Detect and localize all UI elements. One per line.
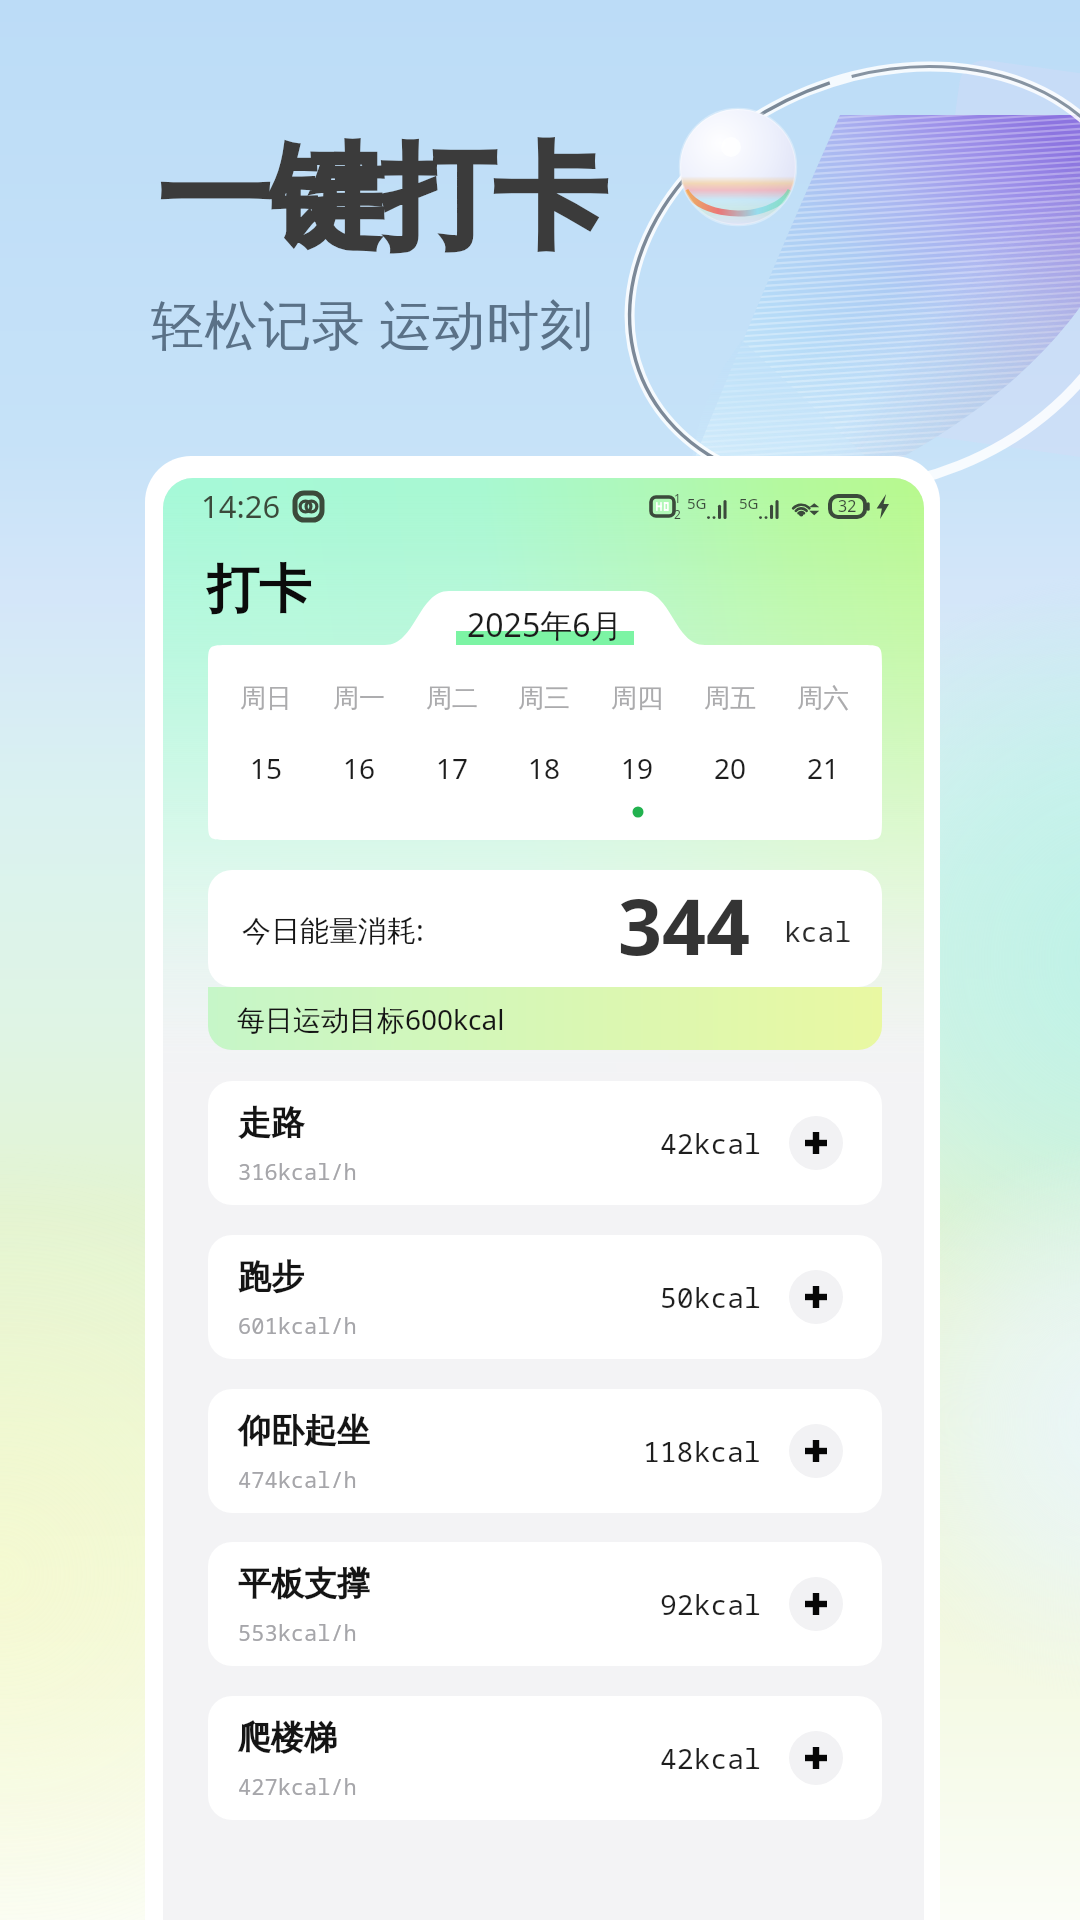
- staticText: 15: [250, 749, 283, 787]
- staticText: 92kcal: [660, 1585, 761, 1623]
- staticText: 周四: [611, 682, 663, 715]
- staticText: 50kcal: [660, 1278, 761, 1316]
- staticText: 一键打卡: [158, 128, 606, 269]
- staticText: 427kcal/h: [238, 1771, 357, 1801]
- button[interactable]: 平板支撑: [208, 1542, 882, 1666]
- button[interactable]: Add 走路: [789, 1116, 843, 1170]
- staticText: 周二: [426, 682, 478, 715]
- staticText: 2025年6月: [467, 603, 623, 647]
- button[interactable]: 走路: [208, 1081, 882, 1205]
- staticText: 17: [436, 749, 469, 787]
- staticText: 474kcal/h: [238, 1464, 357, 1494]
- staticText: 19: [621, 749, 654, 787]
- staticText: 周六: [797, 682, 849, 715]
- staticText: 每日运动目标600kcal: [237, 1000, 505, 1038]
- staticText: 周三: [518, 682, 570, 715]
- button[interactable]: 仰卧起坐: [208, 1389, 882, 1513]
- staticText: 今日能量消耗:: [242, 910, 424, 950]
- staticText: 跑步: [238, 1256, 304, 1298]
- staticText: 2: [674, 506, 681, 522]
- button[interactable]: Add 平板支撑: [789, 1577, 843, 1631]
- staticText: kcal: [784, 912, 852, 950]
- staticText: 走路: [238, 1102, 304, 1144]
- staticText: 601kcal/h: [238, 1310, 357, 1340]
- staticText: 344: [618, 873, 751, 978]
- staticText: 仰卧起坐: [238, 1410, 370, 1452]
- staticText: 周一: [333, 682, 385, 715]
- button[interactable]: Add 爬楼梯: [789, 1731, 843, 1785]
- staticText: 平板支撑: [238, 1563, 370, 1605]
- staticText: 1: [674, 490, 681, 506]
- staticText: 118kcal: [643, 1432, 761, 1470]
- staticText: 20: [714, 749, 747, 787]
- button[interactable]: Add 跑步: [789, 1270, 843, 1324]
- staticText: 21: [807, 749, 840, 787]
- staticText: 5G: [687, 493, 707, 513]
- staticText: 16: [343, 749, 376, 787]
- staticText: 周五: [704, 682, 756, 715]
- staticText: 打卡: [207, 557, 311, 623]
- staticText: 42kcal: [660, 1739, 761, 1777]
- staticText: 周日: [240, 682, 292, 715]
- staticText: 轻松记录 运动时刻: [151, 287, 594, 359]
- staticText: 5G: [739, 493, 759, 513]
- staticText: 553kcal/h: [238, 1617, 357, 1647]
- button[interactable]: Add 仰卧起坐: [789, 1424, 843, 1478]
- staticText: 14:26: [201, 485, 281, 527]
- staticText: 爬楼梯: [238, 1717, 337, 1759]
- button[interactable]: 爬楼梯: [208, 1696, 882, 1820]
- staticText: 316kcal/h: [238, 1156, 357, 1186]
- staticText: 42kcal: [660, 1124, 761, 1162]
- button[interactable]: 跑步: [208, 1235, 882, 1359]
- staticText: 32: [838, 495, 857, 517]
- staticText: 18: [528, 749, 561, 787]
